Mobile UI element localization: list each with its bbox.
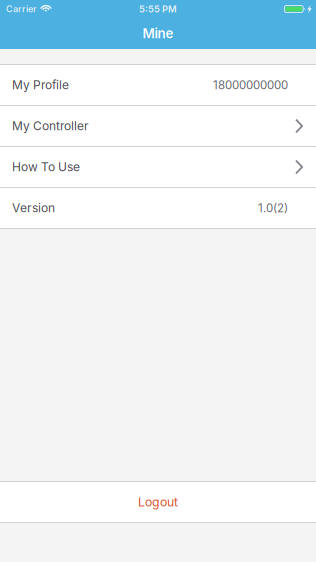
button[interactable]: Logout — [0, 482, 316, 522]
staticText: Carrier — [6, 3, 37, 14]
button[interactable]: How To Use — [0, 147, 316, 187]
staticText: Logout — [138, 495, 178, 509]
button[interactable]: My Profile — [0, 65, 316, 105]
staticText: Version — [12, 201, 55, 215]
staticText: My Controller — [12, 119, 89, 133]
button[interactable]: Version — [0, 188, 316, 228]
staticText: Mine — [142, 25, 173, 41]
staticText: 5:55 PM — [139, 3, 177, 15]
button[interactable]: My Controller — [0, 106, 316, 146]
staticText: 18000000000 — [213, 78, 288, 92]
staticText: How To Use — [12, 160, 80, 174]
staticText: 1.0(2) — [258, 201, 288, 215]
staticText: My Profile — [12, 78, 69, 92]
